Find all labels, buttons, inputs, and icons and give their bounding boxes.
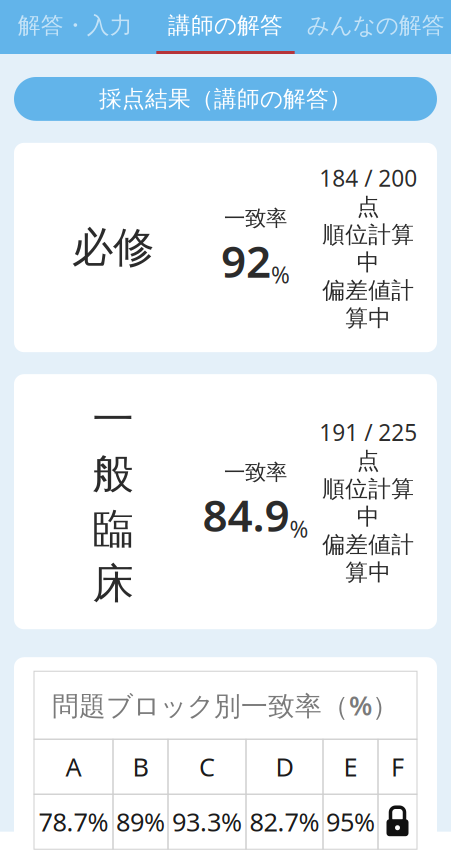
staticText: 92 (221, 231, 271, 290)
staticText: 一致率 (224, 205, 287, 231)
staticText: 一 (92, 394, 133, 445)
button[interactable]: 採点結果（講師の解答） (14, 77, 437, 121)
staticText: % (289, 514, 308, 544)
staticText: 93.3% (172, 805, 242, 838)
button[interactable]: 解答・入力 (0, 0, 150, 54)
staticText: 問題ブロック別一致率（%） (52, 687, 399, 723)
staticText: 191 / 225 点 順位計算 中 偏差値計 算中 (319, 417, 417, 586)
staticText: 一致率 (224, 459, 287, 486)
staticText: 184 / 200 点 順位計算 中 偏差値計 算中 (319, 163, 417, 332)
staticText: 床 (92, 558, 133, 609)
staticText: % (271, 260, 290, 290)
staticText: 臨 (92, 504, 133, 554)
staticText: みんなの解答 (307, 12, 445, 39)
staticText: C (199, 750, 215, 783)
staticText: 89% (116, 805, 165, 838)
staticText: 84.9 (202, 486, 289, 544)
staticText: A (65, 750, 81, 783)
staticText: 95% (326, 805, 375, 838)
button[interactable]: みんなの解答 (301, 0, 451, 54)
staticText: B (132, 750, 148, 783)
staticText: 82.7% (249, 805, 319, 838)
staticText: 般 (92, 449, 133, 500)
staticText: D (275, 750, 293, 783)
staticText: 採点結果（講師の解答） (99, 85, 352, 113)
staticText: 講師の解答 (168, 12, 283, 39)
staticText: 解答・入力 (18, 12, 133, 39)
staticText: F (391, 750, 404, 783)
button[interactable]: 講師の解答 (150, 0, 301, 54)
staticText: 78.7% (38, 805, 108, 838)
staticText: E (343, 750, 357, 783)
staticText: 必修 (72, 222, 154, 273)
